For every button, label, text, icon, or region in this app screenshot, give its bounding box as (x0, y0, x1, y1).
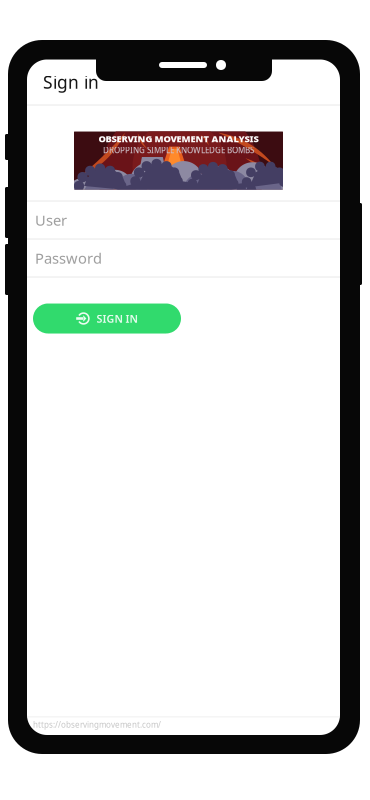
staticText: User (35, 210, 67, 230)
staticText: DROPPING SIMPLE KNOWLEDGE BOMBS (103, 145, 254, 155)
staticText: SIGN IN (96, 311, 137, 326)
button[interactable]: SIGN IN (33, 303, 181, 333)
button[interactable]: User (27, 201, 340, 238)
button[interactable]: Sign in (27, 59, 340, 104)
button[interactable]: Password (27, 239, 340, 276)
staticText: Sign in (43, 70, 99, 93)
staticText: OBSERVING MOVEMENT ANALYSIS (98, 132, 258, 145)
staticText: Password (35, 248, 102, 268)
staticText: https://observingmovement.com/ (33, 719, 161, 730)
